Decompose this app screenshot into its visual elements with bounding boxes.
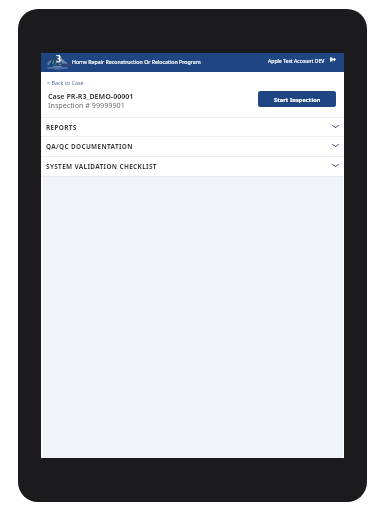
button[interactable]: Apple Test Account DEV, sign out [265,56,339,69]
staticText: SYSTEM VALIDATION CHECKLIST [46,162,157,171]
staticText: QA/QC DOCUMENTATION [46,142,133,151]
button[interactable]: SYSTEM VALIDATION CHECKLIST [41,156,344,176]
staticText: < Back to Case [47,79,84,86]
button[interactable]: < Back to Case [47,79,84,86]
staticText: REPORTS [46,123,77,132]
staticText: Start Inspection [274,96,321,103]
button[interactable]: REPORTS [41,117,344,137]
button[interactable]: Start Inspection [258,91,336,107]
staticText: Case PR-R3_DEMO-00001 [48,91,134,101]
staticText: Home Repair Reconstruction Or Relocation… [72,58,201,65]
button[interactable]: QA/QC DOCUMENTATION [41,136,344,156]
staticText: Apple Test Account DEV [268,58,325,65]
staticText: Inspection # 99999901 [48,100,125,110]
